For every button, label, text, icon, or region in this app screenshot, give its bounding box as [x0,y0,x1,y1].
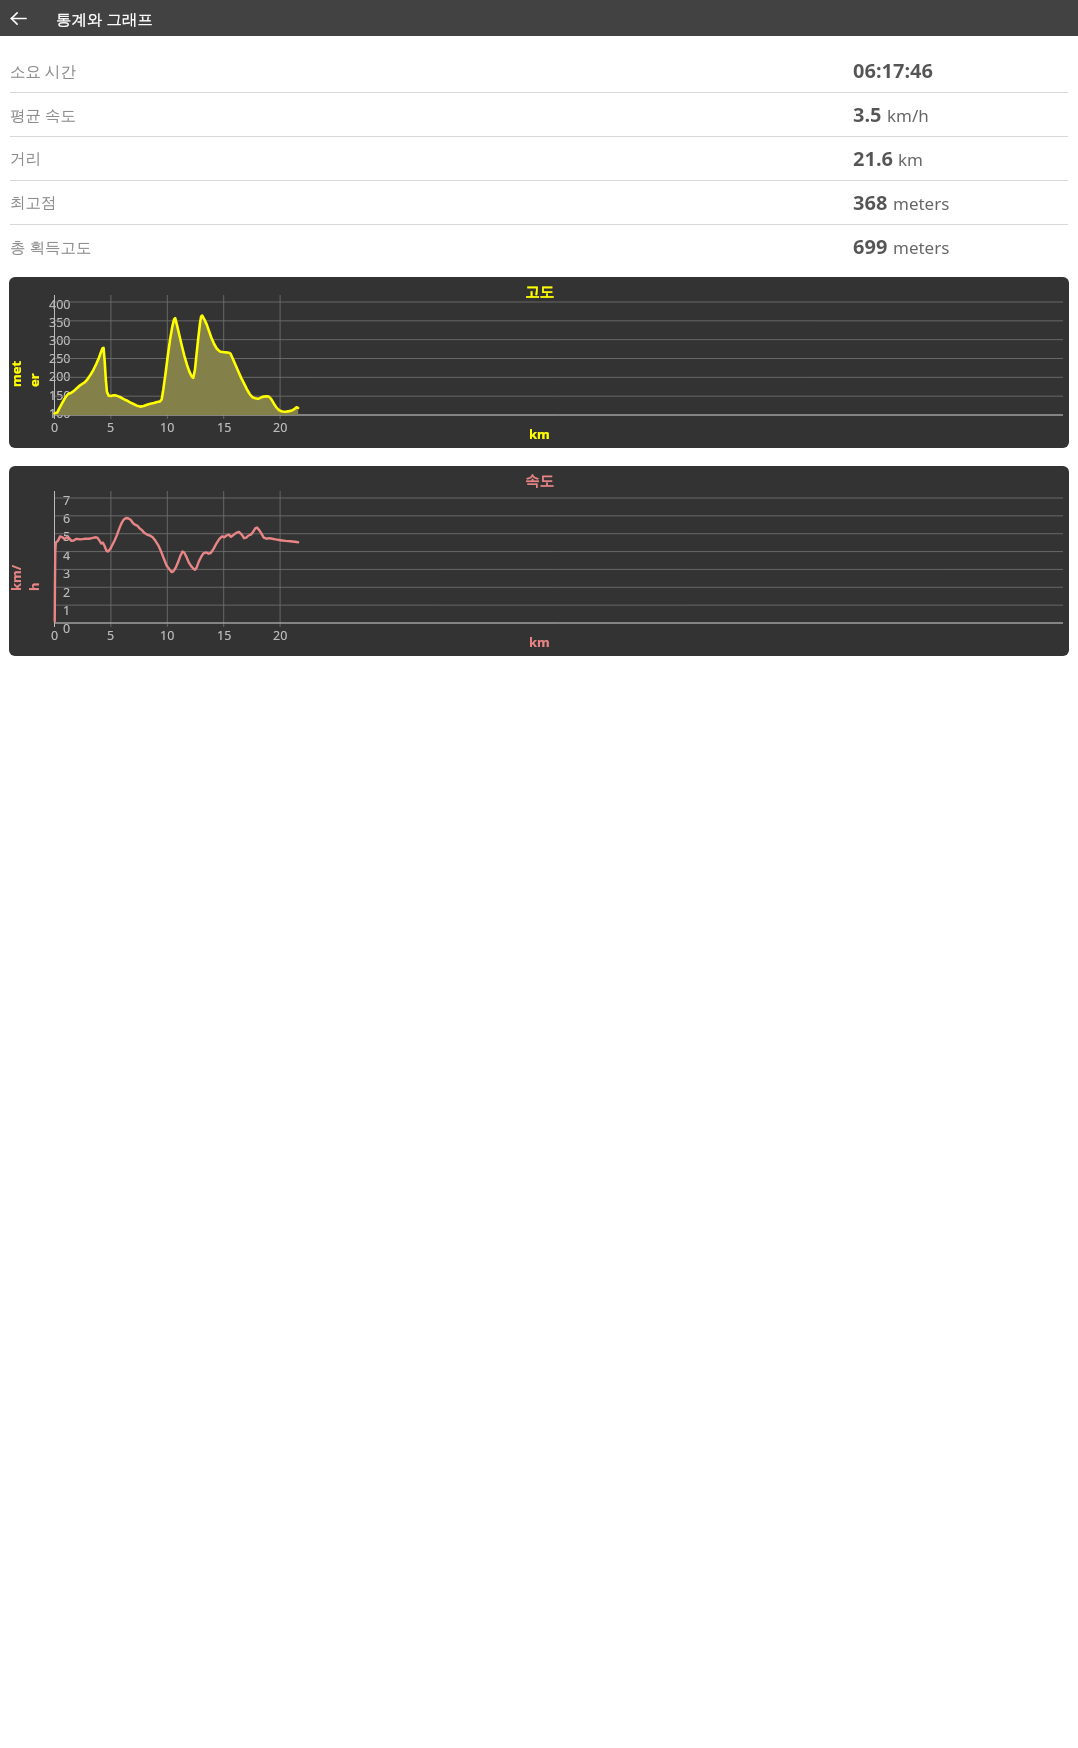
staticText: 06:17:46 [853,57,933,84]
button[interactable]: 평균 속도 [0,93,1078,136]
staticText: 5 [63,528,71,545]
staticText: 속도 [525,472,554,490]
staticText: 100 [49,405,71,422]
staticText: 1 [63,602,71,619]
staticText: 10 [160,627,175,644]
staticText: 699 [853,233,888,260]
staticText: 10 [160,419,175,436]
button[interactable]: 최고점 [0,181,1078,224]
staticText: 400 [49,296,71,313]
staticText: 368 [853,189,888,216]
staticText: 5 [107,419,115,436]
staticText: 거리 [10,149,41,169]
staticText: 250 [49,350,71,367]
button[interactable]: 총 획득고도 [0,225,1078,268]
staticText: km [529,425,550,443]
staticText: 4 [63,547,71,564]
staticText: 통계와 그래프 [56,8,154,29]
staticText: km [529,633,550,651]
staticText: 150 [49,387,71,404]
staticText: 최고점 [10,193,57,213]
staticText: 0 [63,620,71,637]
staticText: 5 [107,627,115,644]
staticText: meter [9,355,43,387]
staticText: 소요 시간 [10,60,77,81]
staticText: 6 [63,510,71,527]
staticText: 3 [63,565,71,582]
button[interactable]: 거리 [0,137,1078,180]
staticText: 350 [49,314,71,331]
staticText: meters [893,236,950,259]
staticText: km/h [9,559,43,591]
staticText: km [898,148,923,171]
staticText: 300 [49,332,71,349]
button[interactable]: Back [0,0,36,36]
staticText: 평균 속도 [10,104,77,125]
staticText: km/h [887,104,929,127]
staticText: 7 [63,492,71,509]
staticText: 200 [49,368,71,385]
button[interactable]: meter [9,277,1069,448]
staticText: 0 [51,419,59,436]
staticText: 15 [217,419,232,436]
staticText: 2 [63,584,71,601]
staticText: 고도 [525,283,554,301]
staticText: 21.6 [853,145,893,172]
staticText: 20 [273,627,288,644]
staticText: 총 획득고도 [10,236,92,257]
staticText: 3.5 [853,101,882,128]
staticText: 20 [273,419,288,436]
button[interactable]: km/h [9,466,1069,656]
staticText: meters [893,192,950,215]
staticText: 15 [217,627,232,644]
staticText: 0 [51,627,59,644]
button[interactable]: 소요 시간 [0,49,1078,92]
